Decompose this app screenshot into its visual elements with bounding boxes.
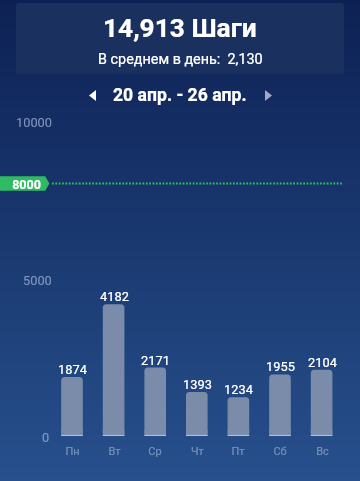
staticText: Чт xyxy=(191,445,204,458)
staticText: 1874 xyxy=(58,362,87,377)
staticText: Ср xyxy=(148,445,162,458)
staticText: 14,913 Шаги xyxy=(103,13,257,44)
staticText: Вт xyxy=(108,445,121,458)
staticText: 10000 xyxy=(16,115,52,130)
button[interactable]: 14,913 Шаги xyxy=(16,3,344,74)
button[interactable]: Previous week xyxy=(79,83,105,108)
staticText: Сб xyxy=(273,445,287,458)
staticText: Вс xyxy=(316,445,329,458)
button[interactable]: Next week xyxy=(255,83,281,108)
staticText: 20 апр. - 26 апр. xyxy=(113,85,247,106)
staticText: 4182 xyxy=(100,289,129,304)
staticText: 1234 xyxy=(224,382,253,397)
staticText: 5000 xyxy=(23,273,52,288)
staticText: 2104 xyxy=(308,355,337,370)
staticText: 2171 xyxy=(141,353,170,368)
staticText: В среднем в день: 2,130 xyxy=(98,51,263,68)
staticText: 0 xyxy=(42,430,50,445)
staticText: Пн xyxy=(65,445,80,458)
staticText: 1393 xyxy=(183,377,212,392)
staticText: 1955 xyxy=(266,359,295,374)
staticText: 8000 xyxy=(12,177,41,192)
staticText: Пт xyxy=(231,445,245,458)
